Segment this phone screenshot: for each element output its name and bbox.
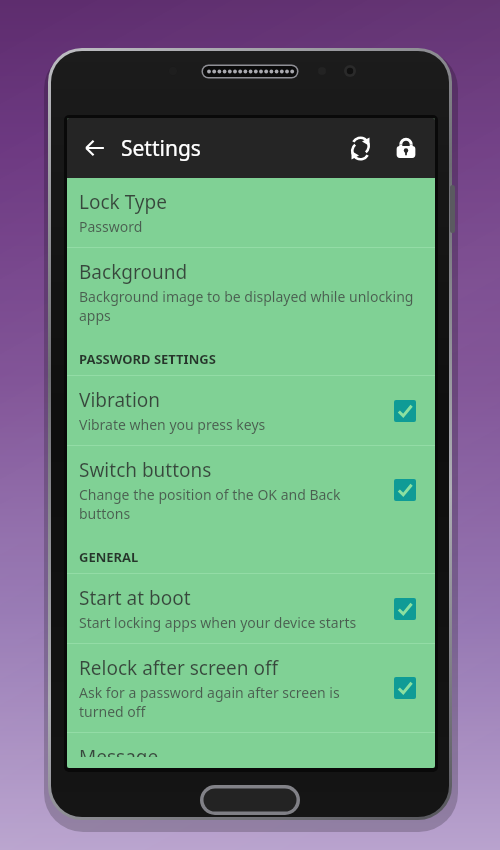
staticText: PASSWORD SETTINGS (79, 350, 216, 368)
staticText: Change the position of the OK and Back b… (79, 485, 377, 523)
button[interactable]: Switch buttons (387, 472, 423, 508)
staticText: Password (79, 217, 143, 236)
button[interactable]: Switch buttons (67, 446, 435, 534)
staticText: Background image to be displayed while u… (79, 287, 423, 325)
staticText: Start at boot (79, 585, 191, 611)
button[interactable]: Vibration (67, 376, 435, 445)
staticText: Start locking apps when your device star… (79, 613, 357, 632)
staticText: Ask for a password again after screen is… (79, 683, 377, 721)
staticText: Settings (121, 134, 201, 163)
staticText: GENERAL (79, 548, 139, 566)
button[interactable]: Vibration (387, 393, 423, 429)
staticText: Vibration (79, 387, 161, 413)
button[interactable]: Back (71, 124, 119, 172)
staticText: Vibrate when you press keys (79, 415, 266, 434)
button[interactable]: Background (67, 248, 435, 336)
staticText: Switch buttons (79, 457, 212, 483)
button[interactable]: Relock after screen off (67, 644, 435, 732)
button[interactable]: Start at boot (387, 591, 423, 627)
staticText: Lock Type (79, 189, 167, 215)
staticText: Background (79, 259, 188, 285)
button[interactable]: Relock after screen off (387, 670, 423, 706)
staticText: Message (79, 744, 159, 757)
button[interactable]: Start at boot (67, 574, 435, 643)
button[interactable]: Lock (383, 125, 429, 171)
button[interactable]: Lock Type (67, 178, 435, 247)
button[interactable]: Message (67, 733, 435, 768)
button[interactable]: Sync (337, 125, 383, 171)
staticText: Relock after screen off (79, 655, 279, 681)
